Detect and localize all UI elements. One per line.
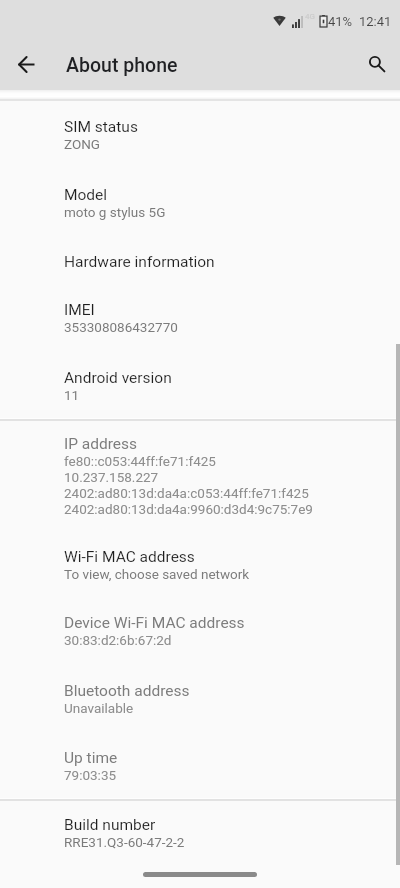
staticText: 353308086432770 <box>64 319 178 335</box>
staticText: To view, choose saved network <box>64 566 250 582</box>
staticText: 11 <box>64 387 80 403</box>
staticText: Bluetooth address <box>64 682 190 700</box>
staticText: About phone <box>66 54 178 77</box>
staticText: fe80::c053:44ff:fe71:f425 <box>64 453 216 469</box>
staticText: 2402:ad80:13d:da4a:c053:44ff:fe71:f425 <box>64 485 309 501</box>
staticText: 12:41 <box>359 14 392 29</box>
staticText: Up time <box>64 749 118 767</box>
button[interactable]: IMEI <box>0 285 400 352</box>
button[interactable]: Wi-Fi MAC address <box>0 530 400 597</box>
button[interactable]: Up time <box>0 731 400 798</box>
staticText: IP address <box>64 435 138 453</box>
button[interactable]: Model <box>0 169 400 236</box>
staticText: ZONG <box>64 136 101 152</box>
staticText: 4G <box>305 12 315 21</box>
staticText: 2402:ad80:13d:da4a:9960:d3d4:9c75:7e9 <box>64 501 313 517</box>
staticText: 10.237.158.227 <box>64 469 159 485</box>
staticText: 30:83:d2:6b:67:2d <box>64 632 172 648</box>
staticText: Hardware information <box>64 253 215 271</box>
staticText: Device Wi-Fi MAC address <box>64 614 245 632</box>
staticText: Wi-Fi MAC address <box>64 548 195 566</box>
button[interactable]: Hardware information <box>0 236 400 285</box>
button[interactable]: IP address <box>0 421 400 530</box>
staticText: IMEI <box>64 301 95 319</box>
staticText: Unavailable <box>64 700 134 716</box>
staticText: Android version <box>64 369 172 387</box>
button[interactable]: Search <box>355 42 400 87</box>
button[interactable]: Bluetooth address <box>0 664 400 731</box>
staticText: moto g stylus 5G <box>64 204 166 220</box>
button[interactable]: SIM status <box>0 102 400 169</box>
staticText: SIM status <box>64 118 138 136</box>
staticText: RRE31.Q3-60-47-2-2 <box>64 834 185 850</box>
staticText: Build number <box>64 816 156 834</box>
button[interactable]: Build number <box>0 800 400 867</box>
button[interactable]: Android version <box>0 352 400 419</box>
button[interactable]: Navigate up <box>4 42 49 87</box>
staticText: Model <box>64 186 108 204</box>
staticText: 79:03:35 <box>64 767 117 783</box>
staticText: 41% <box>328 14 353 29</box>
button[interactable]: Device Wi-Fi MAC address <box>0 597 400 664</box>
